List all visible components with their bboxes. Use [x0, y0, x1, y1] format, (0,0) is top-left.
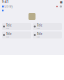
staticText: Title [6, 24, 12, 27]
button[interactable]: Account [60, 5, 62, 8]
button[interactable]: Title [33, 31, 62, 38]
staticText: Title [37, 24, 43, 27]
button[interactable]: Title [2, 31, 31, 38]
staticText: Title [6, 32, 12, 36]
staticText: ▮▮ [60, 0, 62, 3]
staticText: Sub [37, 28, 40, 29]
staticText: Title [37, 32, 43, 36]
button[interactable]: Title [33, 23, 62, 30]
staticText: Sub [37, 36, 40, 38]
button[interactable]: Title [2, 23, 31, 30]
staticText: 9:41 [2, 0, 9, 4]
staticText: Sub [6, 28, 9, 29]
button[interactable]: Library [2, 5, 12, 8]
staticText: Library [4, 5, 12, 8]
